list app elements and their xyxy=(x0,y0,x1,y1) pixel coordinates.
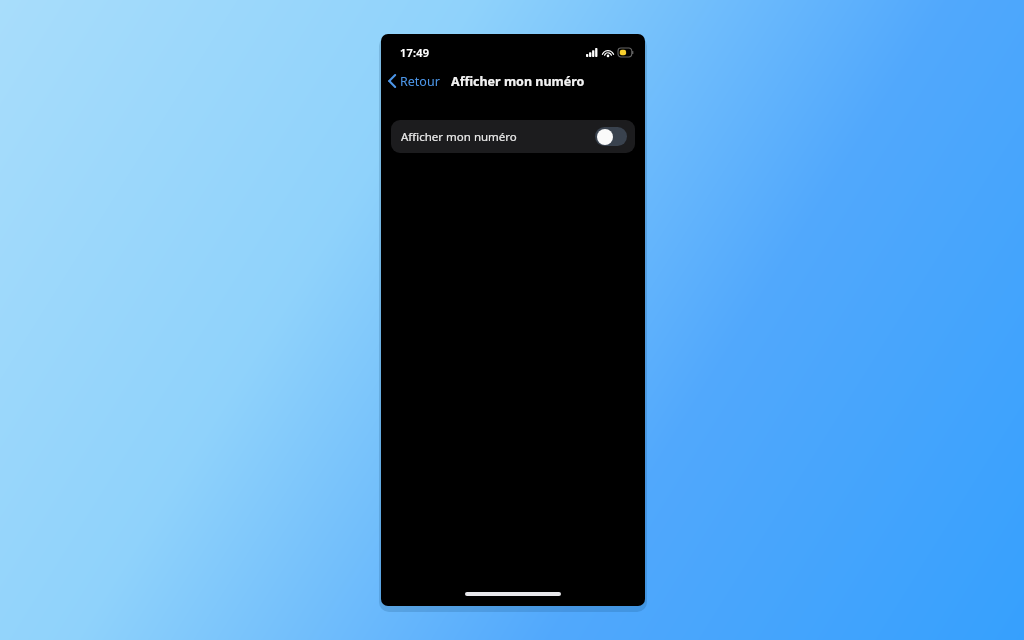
staticText: Afficher mon numéro xyxy=(401,129,517,145)
button[interactable]: Afficher mon numéro, désactivé xyxy=(595,127,627,146)
button[interactable]: Retour xyxy=(381,66,446,96)
staticText: 17:49 xyxy=(400,45,430,60)
staticText: Retour xyxy=(400,73,440,90)
staticText: Afficher mon numéro xyxy=(451,73,585,90)
button[interactable]: Afficher mon numéro xyxy=(391,120,635,153)
